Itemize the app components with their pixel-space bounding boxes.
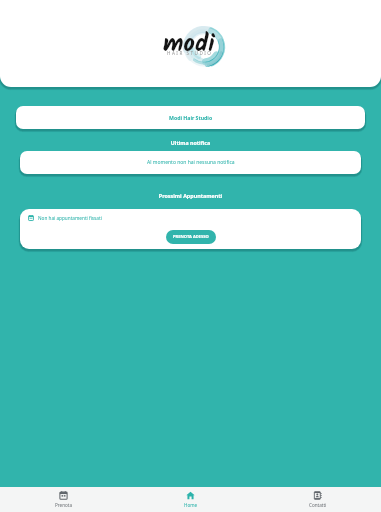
button[interactable]: PRENOTA ADESSO: [166, 230, 216, 244]
staticText: Non hai appuntamenti fissati: [38, 215, 102, 221]
other: Calendario: [28, 215, 34, 221]
button[interactable]: Modi Hair Studio: [16, 106, 365, 129]
staticText: PRENOTA ADESSO: [173, 234, 209, 240]
button[interactable]: Home: [127, 487, 254, 512]
staticText: Prenota: [55, 502, 73, 508]
button[interactable]: Al momento non hai nessuna notifica: [20, 151, 361, 174]
button[interactable]: Contatti: [254, 487, 381, 512]
staticText: Ultima notifica: [0, 139, 381, 146]
staticText: Prossimi Appuntamenti: [0, 192, 381, 199]
button[interactable]: Prenota: [0, 487, 127, 512]
button[interactable]: Calendario: [20, 209, 361, 249]
staticText: Contatti: [309, 502, 327, 508]
staticText: modi: [163, 24, 215, 64]
staticText: Modi Hair Studio: [169, 114, 213, 121]
other: Modi Hair Studio logo: [0, 0, 381, 87]
staticText: Al momento non hai nessuna notifica: [147, 159, 235, 166]
staticText: HAIR STUDIO: [167, 50, 213, 56]
staticText: Home: [184, 502, 198, 508]
